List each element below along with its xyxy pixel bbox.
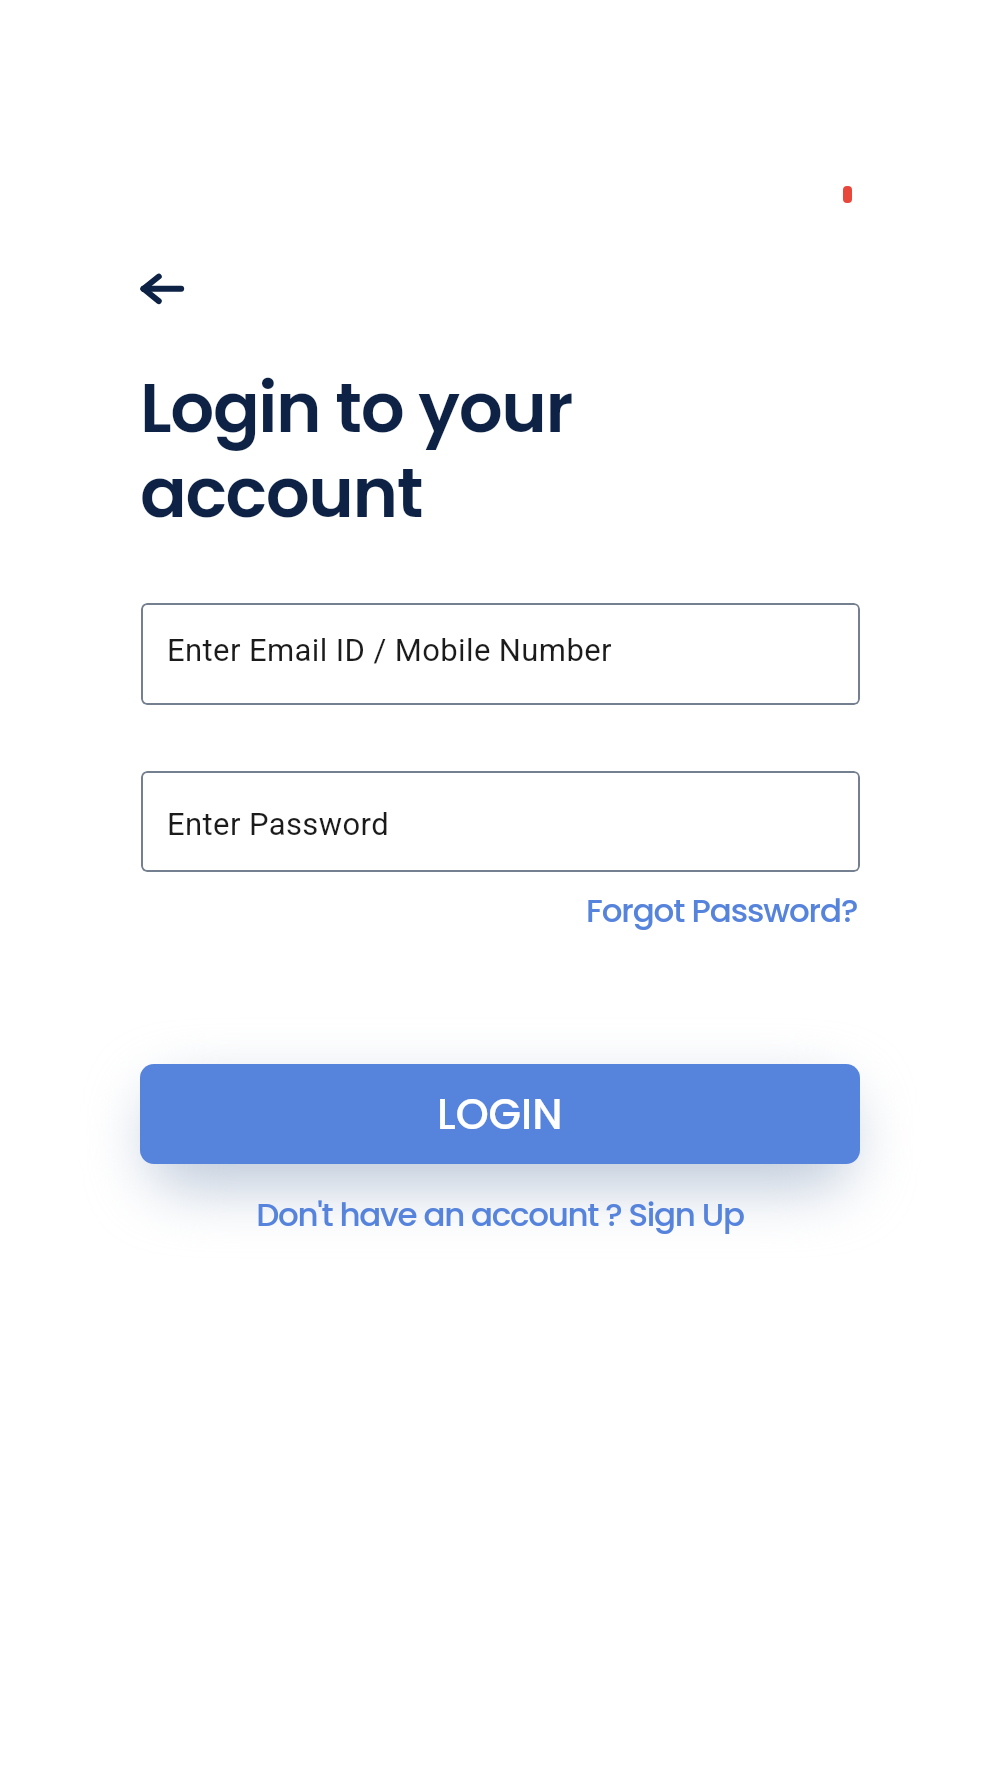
button[interactable]: Forgot Password?	[538, 884, 858, 938]
button[interactable]: Back	[118, 252, 198, 332]
staticText: Enter Password	[167, 806, 390, 842]
staticText: Don't have an account ? Sign Up	[256, 1192, 744, 1238]
staticText: LOGIN	[437, 1085, 563, 1144]
button[interactable]: Enter Email ID / Mobile Number	[141, 603, 860, 705]
button[interactable]: Enter Password	[141, 771, 860, 872]
staticText: Enter Email ID / Mobile Number	[167, 632, 612, 668]
button[interactable]: Don't have an account ? Sign Up	[0, 1186, 1000, 1244]
staticText: Forgot Password?	[586, 888, 858, 934]
button[interactable]: LOGIN	[140, 1064, 860, 1164]
staticText: Login to your account	[140, 360, 572, 541]
